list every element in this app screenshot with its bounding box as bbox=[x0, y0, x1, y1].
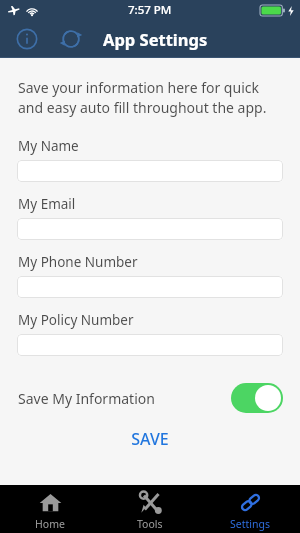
button[interactable]: Information bbox=[14, 26, 40, 52]
button[interactable]: Refresh bbox=[58, 26, 84, 52]
staticText: Home bbox=[35, 517, 65, 531]
button[interactable] bbox=[17, 276, 283, 298]
staticText: My Email bbox=[18, 195, 76, 213]
staticText: My Phone Number bbox=[18, 253, 138, 271]
staticText: Tools bbox=[137, 517, 163, 531]
button[interactable] bbox=[17, 334, 283, 356]
staticText: App Settings bbox=[103, 28, 208, 50]
staticText: SAVE bbox=[131, 428, 169, 450]
button[interactable]: Home bbox=[0, 485, 100, 533]
staticText: Settings bbox=[230, 517, 270, 531]
button[interactable] bbox=[17, 218, 283, 240]
staticText: Save My Information bbox=[18, 389, 155, 408]
staticText: My Name bbox=[18, 137, 79, 155]
button[interactable]: Settings bbox=[200, 485, 300, 533]
button[interactable]: Save My Information toggle, on bbox=[231, 383, 283, 413]
button[interactable]: Tools bbox=[100, 485, 200, 533]
staticText: My Policy Number bbox=[18, 311, 134, 329]
staticText: 7:57 PM bbox=[128, 2, 172, 18]
button[interactable]: SAVE bbox=[131, 428, 169, 450]
button[interactable] bbox=[17, 160, 283, 182]
staticText: Save your information here for quick and… bbox=[18, 78, 282, 117]
